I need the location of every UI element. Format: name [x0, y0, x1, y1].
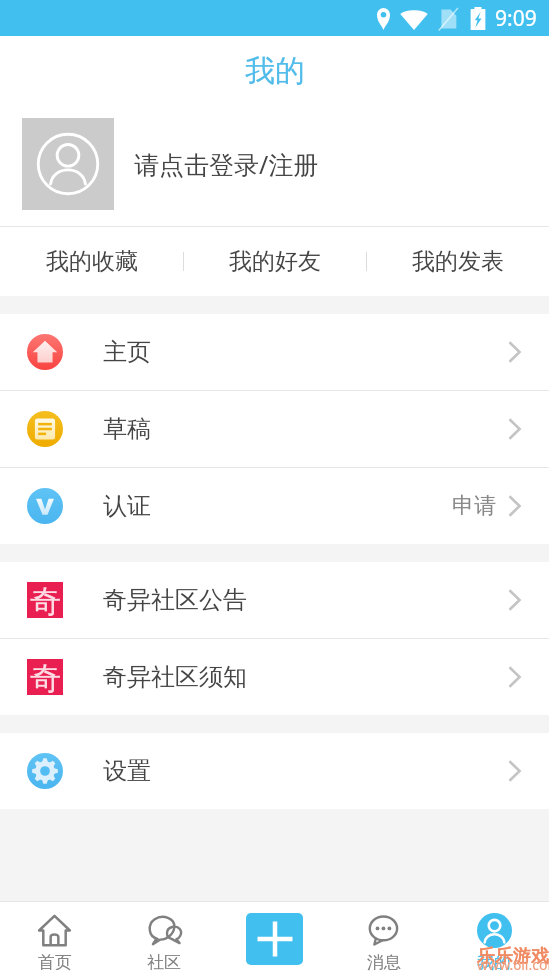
- button[interactable]: 消息: [329, 902, 439, 976]
- button[interactable]: 我的好友: [184, 227, 366, 296]
- staticText: 奇: [30, 582, 61, 618]
- staticText: 奇异社区须知: [103, 662, 247, 692]
- staticText: 我的收藏: [46, 247, 138, 276]
- button[interactable]: 认证: [0, 468, 549, 544]
- button[interactable]: 首页: [0, 902, 109, 976]
- staticText: 乐乐游戏: [477, 945, 549, 968]
- staticText: 申请: [452, 492, 496, 520]
- staticText: 我的发表: [412, 247, 504, 276]
- staticText: 我的: [245, 52, 305, 90]
- staticText: 我的: [477, 952, 511, 973]
- button[interactable]: 我的: [439, 902, 549, 976]
- button[interactable]: 设置: [0, 733, 549, 809]
- button[interactable]: 发布: [246, 913, 303, 965]
- staticText: 设置: [103, 756, 151, 786]
- staticText: 我的好友: [229, 247, 321, 276]
- staticText: 请点击登录/注册: [134, 147, 319, 181]
- staticText: 9:09: [495, 4, 537, 33]
- button[interactable]: 主页: [0, 314, 549, 390]
- staticText: 社区: [147, 952, 181, 973]
- button[interactable]: 我的收藏: [0, 227, 183, 296]
- staticText: 主页: [103, 337, 151, 367]
- staticText: 认证: [103, 491, 151, 521]
- staticText: 奇异社区公告: [103, 585, 247, 615]
- button[interactable]: 草稿: [0, 391, 549, 467]
- staticText: 奇: [30, 659, 61, 695]
- staticText: 首页: [38, 952, 72, 973]
- button[interactable]: 请点击登录/注册: [0, 102, 549, 226]
- button[interactable]: 奇: [0, 639, 549, 715]
- staticText: www.6ll.com: [477, 955, 549, 974]
- button[interactable]: 奇: [0, 562, 549, 638]
- staticText: 草稿: [103, 414, 151, 444]
- button[interactable]: 社区: [109, 902, 219, 976]
- button[interactable]: 我的发表: [367, 227, 549, 296]
- staticText: 消息: [367, 952, 401, 973]
